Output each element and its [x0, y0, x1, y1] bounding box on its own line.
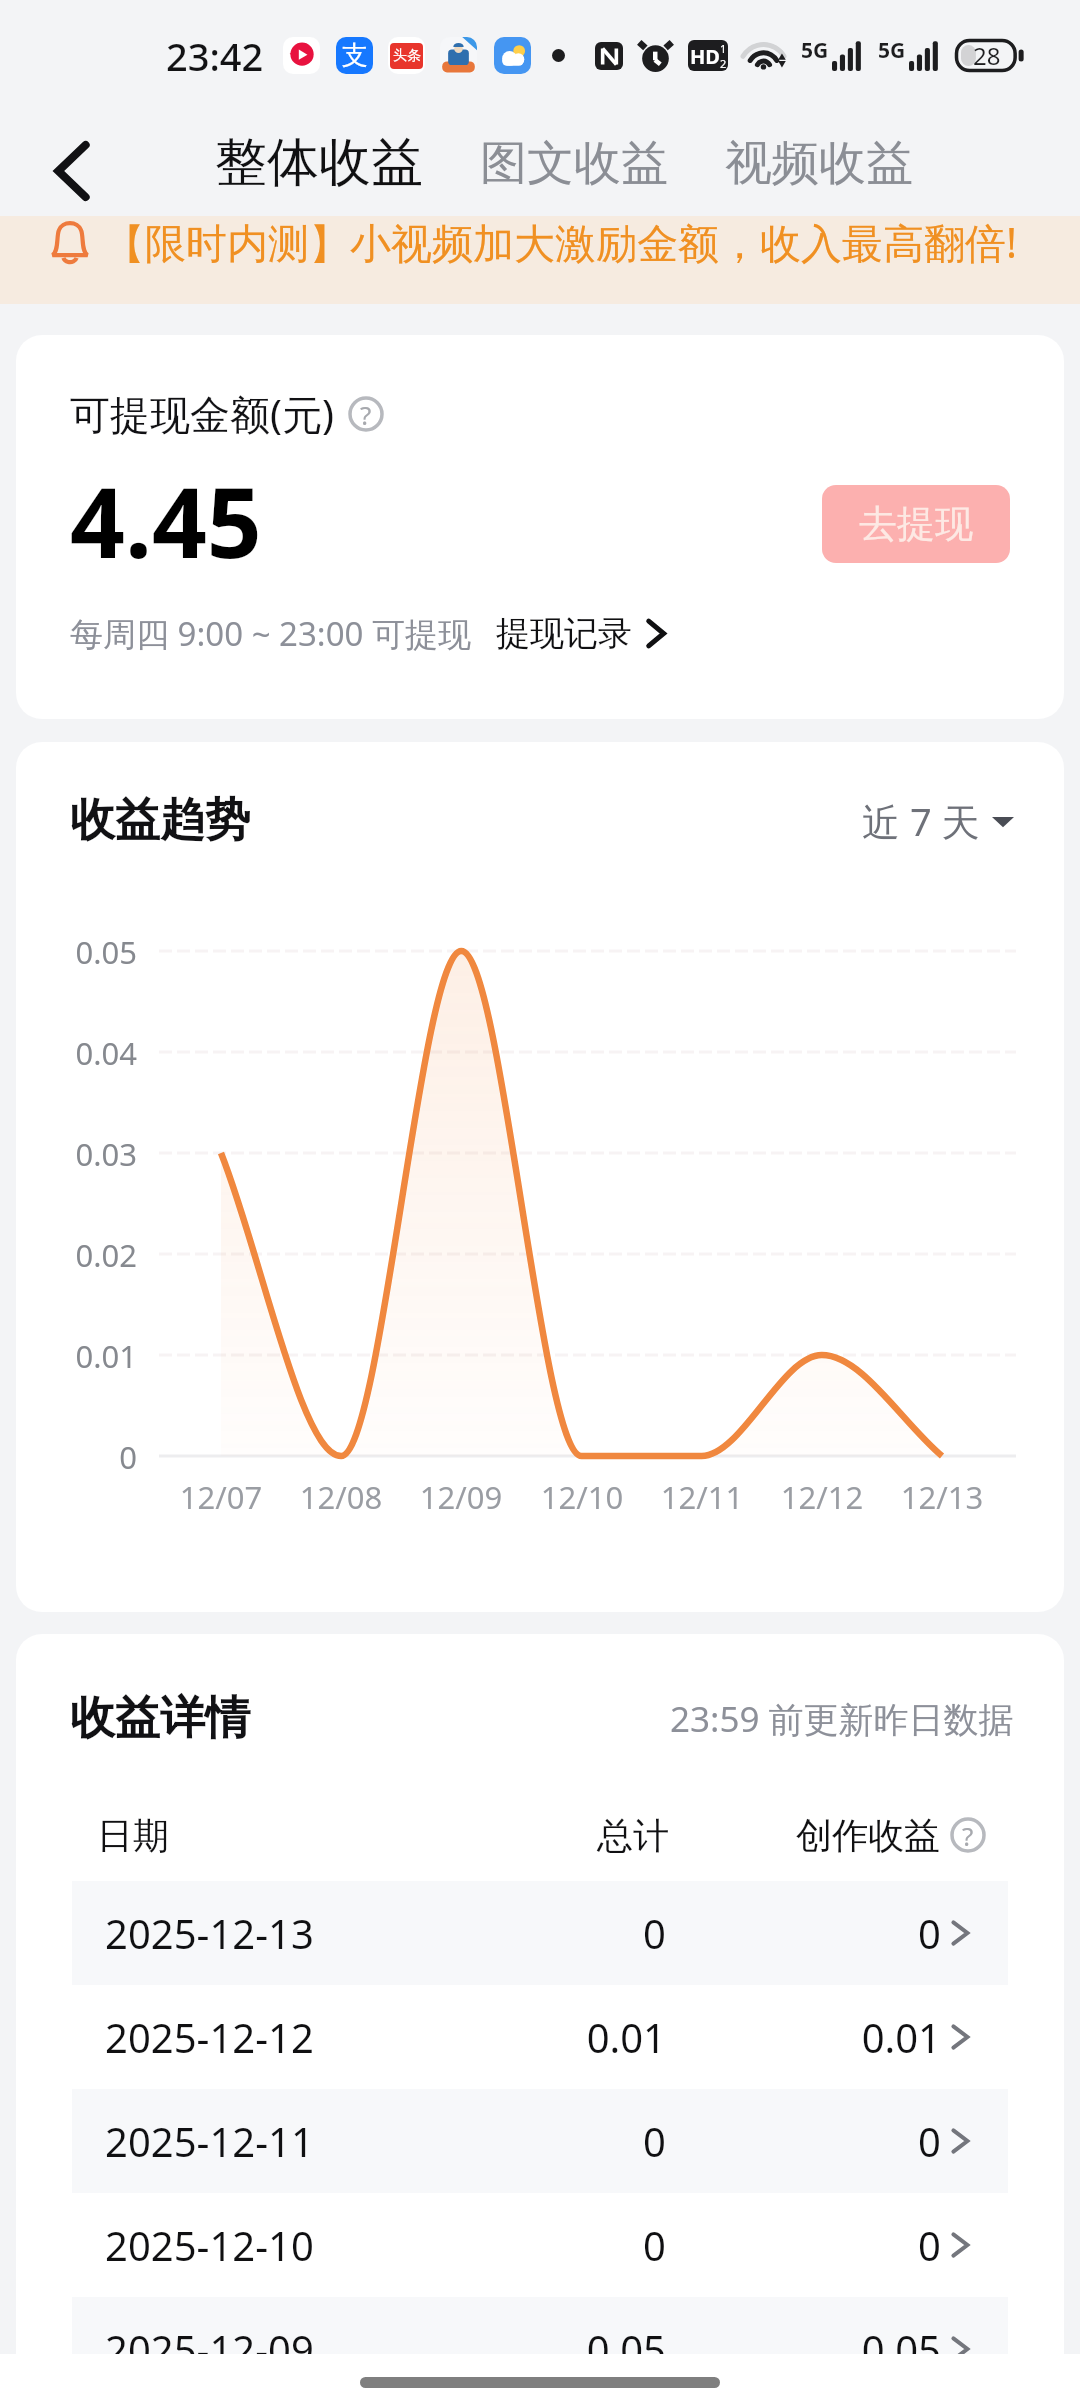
staticText: 5G [801, 36, 829, 65]
staticText: 2025-12-12 [105, 2010, 314, 2064]
staticText: 收益详情 [70, 1690, 250, 1747]
staticText: 12/07 [141, 1476, 301, 1518]
staticText: 0.05 [346, 2322, 666, 2376]
button[interactable]: Back [28, 127, 116, 215]
staticText: 图文收益 [480, 134, 668, 193]
staticText: 5G [878, 36, 906, 65]
button[interactable]: 去提现 [822, 485, 1010, 563]
button[interactable]: 2025-12-10 [72, 2193, 1008, 2297]
button[interactable]: Help [950, 1817, 986, 1853]
staticText: 0 [16, 1436, 137, 1478]
button[interactable]: 图文收益 [468, 120, 680, 207]
staticText: 23:59 前更新昨日数据 [670, 1695, 1014, 1743]
button[interactable]: 【限时内测】小视频加大激励金额，收入最高翻倍! [0, 216, 1080, 304]
staticText: 1 [720, 41, 727, 56]
staticText: 近 7 天 [862, 795, 980, 847]
staticText: 整体收益 [215, 130, 423, 196]
staticText: 头条 [393, 47, 421, 65]
staticText: 每周四 9:00 ~ 23:00 可提现 [70, 611, 472, 656]
staticText: 收益趋势 [70, 792, 250, 849]
staticText: 12/13 [862, 1476, 1022, 1518]
staticText: 提现记录 [496, 612, 632, 655]
staticText: 12/10 [502, 1476, 662, 1518]
staticText: 2025-12-09 [105, 2322, 314, 2376]
staticText: HD [690, 43, 720, 70]
staticText: ? [360, 397, 372, 432]
staticText: 0.01 [16, 1335, 137, 1377]
staticText: 23:42 [166, 30, 264, 82]
button[interactable]: 整体收益 [203, 116, 435, 210]
staticText: 【限时内测】小视频加大激励金额，收入最高翻倍! [104, 214, 1018, 270]
staticText: 去提现 [859, 500, 973, 548]
staticText: 总计 [349, 1813, 669, 1858]
staticText: 12/09 [381, 1476, 541, 1518]
button[interactable]: Help [348, 396, 384, 432]
staticText: 12/12 [742, 1476, 902, 1518]
staticText: 2025-12-10 [105, 2218, 314, 2272]
staticText: 12/08 [261, 1476, 421, 1518]
staticText: 0 [621, 2218, 941, 2272]
staticText: 视频收益 [725, 134, 913, 193]
staticText: 0.05 [16, 931, 137, 973]
staticText: 28 [973, 39, 1001, 72]
staticText: 0 [621, 1906, 941, 1960]
staticText: 0.04 [16, 1032, 137, 1074]
staticText: 支 [342, 39, 368, 72]
button[interactable]: 2025-12-09 [72, 2297, 1008, 2400]
staticText: 0.03 [16, 1133, 137, 1175]
staticText: 0 [346, 1906, 666, 1960]
staticText: 可提现金额(元) [70, 386, 334, 441]
staticText: 4.45 [70, 455, 262, 586]
button[interactable]: 2025-12-13 [72, 1881, 1008, 1985]
button[interactable]: 2025-12-11 [72, 2089, 1008, 2193]
staticText: 0 [346, 2218, 666, 2272]
button[interactable]: 近 7 天 [862, 795, 1014, 847]
staticText: 2025-12-11 [105, 2114, 314, 2168]
staticText: 2025-12-13 [105, 1906, 314, 1960]
button[interactable]: 视频收益 [713, 120, 925, 207]
staticText: 日期 [97, 1813, 169, 1858]
staticText: 0.01 [621, 2010, 941, 2064]
staticText: 0.05 [621, 2322, 941, 2376]
staticText: 创作收益 [620, 1813, 940, 1858]
staticText: ? [962, 1818, 974, 1853]
staticText: 0 [621, 2114, 941, 2168]
staticText: 0.01 [346, 2010, 666, 2064]
button[interactable]: 提现记录 [496, 612, 667, 655]
button[interactable]: 2025-12-12 [72, 1985, 1008, 2089]
staticText: 2 [720, 56, 727, 71]
staticText: 0.02 [16, 1234, 137, 1276]
staticText: 12/11 [622, 1476, 782, 1518]
staticText: 0 [346, 2114, 666, 2168]
